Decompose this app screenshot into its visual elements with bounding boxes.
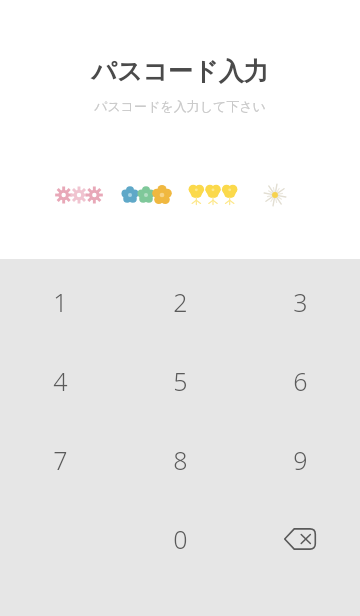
staticText: 4 [53,364,68,398]
button[interactable]: 8 [120,434,240,486]
staticText: 1 [53,285,68,319]
button[interactable]: 7 [0,434,120,486]
staticText: 3 [293,285,308,319]
staticText: 7 [53,443,68,477]
staticText: 6 [293,364,308,398]
staticText: パスコード入力 [91,56,269,87]
staticText: パスコードを入力して下さい [94,98,266,114]
button[interactable]: Backspace [240,513,360,565]
staticText: 5 [173,364,188,398]
button[interactable]: 1 [0,276,120,328]
button[interactable]: 0 [120,513,240,565]
button[interactable]: 6 [240,355,360,407]
staticText: 8 [173,443,188,477]
button[interactable]: 9 [240,434,360,486]
button[interactable]: 2 [120,276,240,328]
button[interactable]: 3 [240,276,360,328]
button[interactable]: 5 [120,355,240,407]
staticText: 0 [173,522,188,556]
staticText: 9 [293,443,308,477]
staticText: 2 [173,285,188,319]
button[interactable]: 4 [0,355,120,407]
